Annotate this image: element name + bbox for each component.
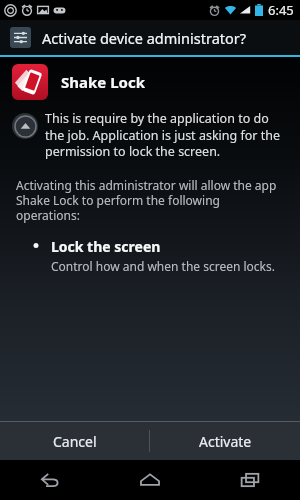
staticText: Activating this administrator will allow… xyxy=(16,177,278,223)
staticText: Lock the screen xyxy=(51,237,161,256)
staticText: Shake Lock xyxy=(61,72,145,92)
staticText: Control how and when the screen locks. xyxy=(51,258,275,274)
staticText: This is require by the application to do… xyxy=(45,110,288,159)
button[interactable]: Activate xyxy=(150,422,300,460)
button[interactable]: Home xyxy=(100,460,200,500)
button[interactable]: Recent apps xyxy=(200,460,300,500)
staticText: Activate device administrator? xyxy=(42,28,247,48)
button[interactable]: Cancel xyxy=(0,422,149,460)
staticText: 6:45 xyxy=(268,1,294,19)
button[interactable]: Back xyxy=(0,460,100,500)
button[interactable]: Collapse description xyxy=(12,113,38,139)
staticText: Cancel xyxy=(53,432,97,451)
staticText: Activate xyxy=(199,432,252,451)
